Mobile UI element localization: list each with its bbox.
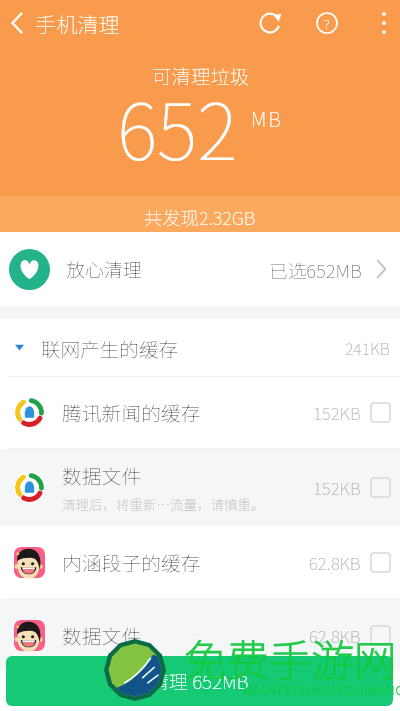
staticText: 腾讯新闻的缓存 (62, 398, 201, 427)
staticText: MIANFEISHOUYOUWANG (243, 679, 400, 699)
staticText: 62.8KB (309, 550, 361, 575)
staticText: 清理 652MB (150, 667, 249, 695)
staticText: 内涵段子的缓存 (62, 548, 201, 577)
staticText: 241KB (345, 336, 390, 359)
button[interactable]: 联网产生的缓存 (0, 319, 400, 376)
staticText: 清理后，将重新…流量，请慎重。 (62, 494, 265, 514)
button[interactable]: More options (368, 0, 400, 46)
staticText: 62.8KB (309, 623, 361, 648)
button[interactable]: 放心清理 (0, 232, 400, 306)
staticText: 可清理垃圾 (152, 61, 249, 89)
staticText: 共发现2.32GB (144, 204, 256, 230)
button[interactable]: 清理 652MB (6, 656, 393, 706)
staticText: 放心清理 (66, 255, 143, 283)
button[interactable]: 手机清理 (0, 0, 128, 46)
staticText: 免费手游网 (184, 627, 397, 689)
staticText: 152KB (313, 475, 361, 500)
staticText: 已选652MB (269, 256, 362, 283)
staticText: 数据文件 (62, 461, 142, 490)
staticText: 652 (117, 71, 238, 182)
button[interactable]: Help (304, 0, 350, 46)
button[interactable]: 数据文件 (0, 449, 400, 526)
button[interactable]: 数据文件 (0, 599, 400, 671)
button[interactable]: 腾讯新闻的缓存 (0, 377, 400, 448)
button[interactable]: Refresh (247, 0, 293, 46)
staticText: ? (324, 14, 330, 33)
button[interactable]: 内涵段子的缓存 (0, 526, 400, 598)
staticText: 联网产生的缓存 (41, 334, 179, 362)
staticText: 数据文件 (62, 621, 142, 650)
staticText: MB (251, 104, 283, 133)
staticText: 手机清理 (35, 8, 120, 39)
staticText: 152KB (313, 400, 361, 425)
